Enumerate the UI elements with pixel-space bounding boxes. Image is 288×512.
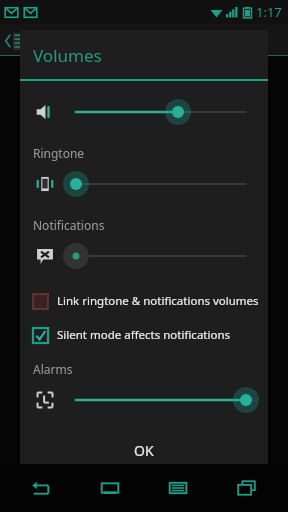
staticText: Volumes — [33, 44, 102, 67]
button[interactable]: Recent apps — [219, 464, 275, 512]
button[interactable] — [20, 165, 268, 203]
staticText: Link ringtone & notifications volumes — [57, 293, 259, 309]
button[interactable]: Silent mode affects notifications — [20, 321, 268, 349]
staticText: OK — [134, 441, 154, 460]
button[interactable] — [20, 93, 268, 131]
button[interactable] — [20, 237, 268, 275]
staticText: Silent mode affects notifications — [57, 327, 231, 343]
staticText: Alarms — [33, 361, 73, 377]
button[interactable]: Menu — [150, 464, 206, 512]
staticText: 1:17 — [256, 3, 282, 21]
button[interactable]: OK — [20, 433, 268, 467]
button[interactable]: Back — [13, 464, 69, 512]
button[interactable] — [20, 381, 268, 419]
staticText: Notifications — [33, 217, 105, 233]
button[interactable]: Home — [82, 464, 138, 512]
staticText: Ringtone — [33, 145, 85, 161]
button[interactable]: Link ringtone & notifications volumes — [20, 287, 268, 315]
